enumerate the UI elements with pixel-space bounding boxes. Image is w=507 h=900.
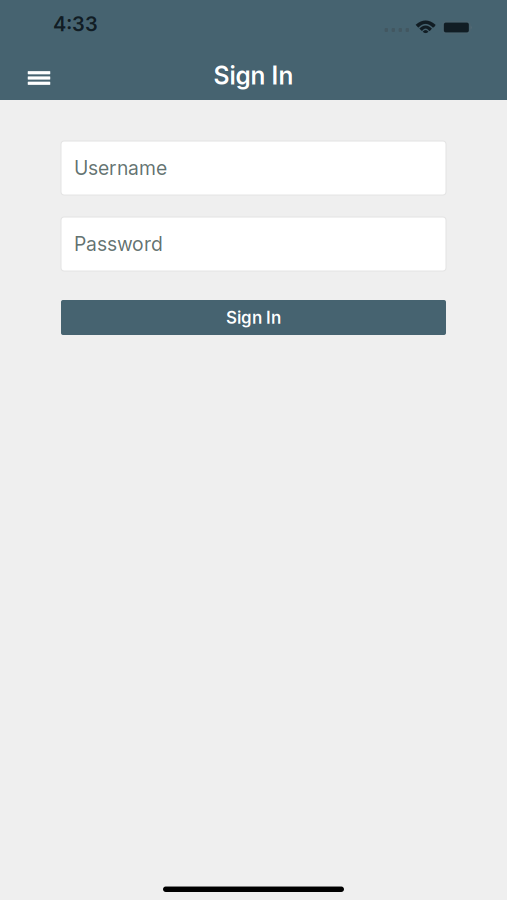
staticText: Sign In	[213, 61, 293, 90]
staticText: Password	[74, 232, 163, 256]
staticText: Sign In	[226, 307, 281, 328]
button[interactable]: Sign In	[61, 300, 446, 335]
button[interactable]: Username	[61, 141, 446, 195]
staticText: Username	[74, 156, 167, 180]
staticText: 4:33	[53, 12, 98, 36]
button[interactable]: Password	[61, 217, 446, 271]
button[interactable]: Menu	[14, 38, 64, 105]
